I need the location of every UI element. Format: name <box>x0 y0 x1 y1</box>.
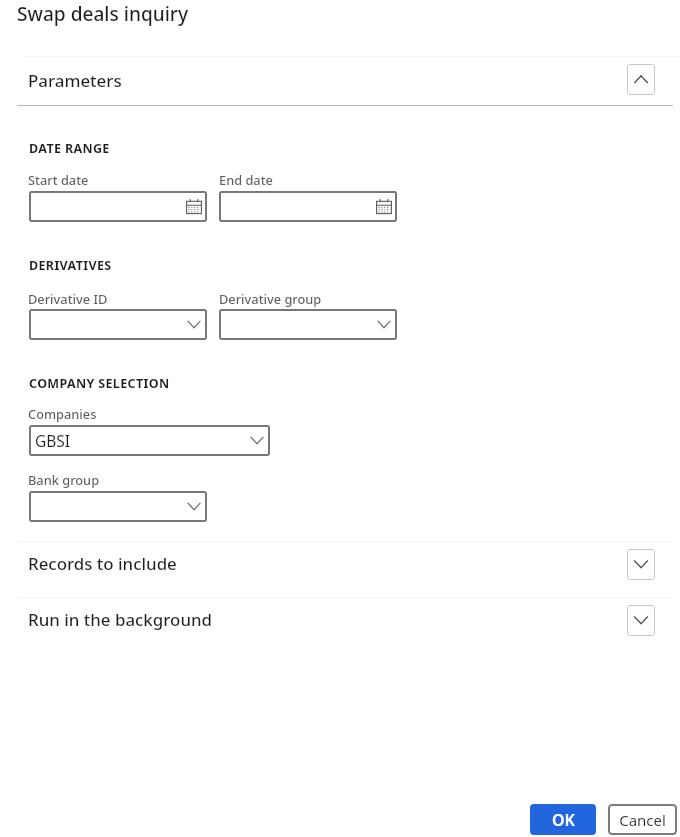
staticText: End date <box>219 171 273 188</box>
staticText: Run in the background <box>28 608 213 631</box>
button[interactable] <box>29 191 207 222</box>
staticText: Companies <box>28 405 97 422</box>
staticText: Cancel <box>619 810 666 830</box>
staticText: Start date <box>28 171 89 188</box>
staticText: OK <box>552 809 575 831</box>
staticText: Parameters <box>28 69 122 92</box>
button[interactable] <box>219 309 397 340</box>
staticText: GBSI <box>35 430 71 451</box>
staticText: DATE RANGE <box>29 140 110 157</box>
button[interactable] <box>29 309 207 340</box>
button[interactable]: Collapse Parameters <box>627 64 655 95</box>
staticText: Bank group <box>28 471 100 488</box>
button[interactable] <box>29 491 207 522</box>
staticText: Derivative ID <box>28 290 108 307</box>
staticText: DERIVATIVES <box>29 257 112 274</box>
button[interactable]: Expand Run in the background <box>627 605 655 636</box>
staticText: COMPANY SELECTION <box>29 375 170 392</box>
button[interactable]: OK <box>530 804 596 835</box>
staticText: Records to include <box>28 552 177 575</box>
button[interactable]: GBSI <box>29 425 270 456</box>
button[interactable]: Expand Records to include <box>627 549 655 580</box>
staticText: Swap deals inquiry <box>17 1 189 27</box>
staticText: Derivative group <box>219 290 322 307</box>
button[interactable]: Cancel <box>608 804 677 835</box>
button[interactable] <box>219 191 397 222</box>
